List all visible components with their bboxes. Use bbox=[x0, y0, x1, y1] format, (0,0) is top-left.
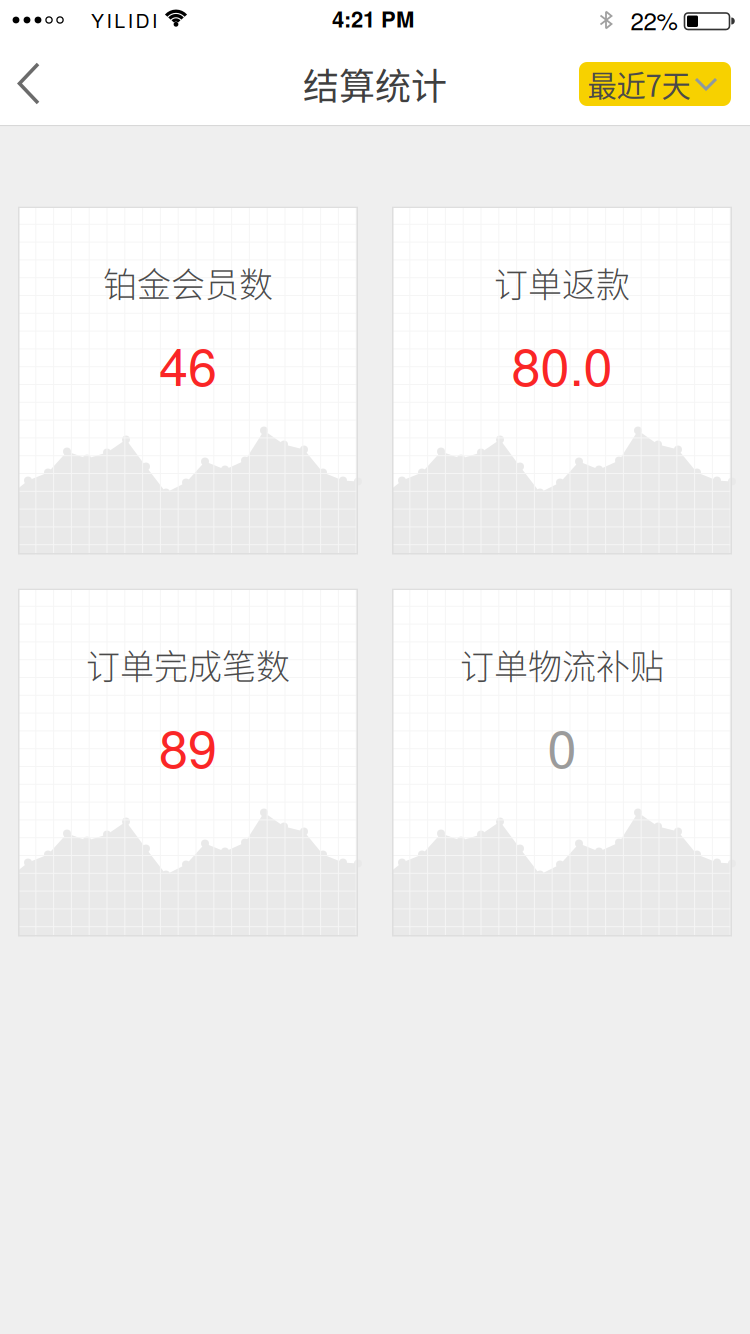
staticText: 22% bbox=[630, 3, 677, 37]
staticText: I bbox=[107, 6, 112, 33]
staticText: D bbox=[135, 6, 149, 33]
staticText: 4:21 PM bbox=[332, 3, 414, 34]
staticText: I bbox=[128, 6, 133, 33]
staticText: Y bbox=[91, 6, 104, 33]
staticText: 结算统计 bbox=[303, 58, 447, 110]
button[interactable]: Back bbox=[0, 52, 62, 115]
staticText: L bbox=[114, 6, 125, 33]
staticText: 订单返款 bbox=[494, 258, 630, 307]
staticText: 46 bbox=[159, 326, 217, 401]
staticText: 80.0 bbox=[511, 326, 612, 401]
staticText: 订单完成笔数 bbox=[86, 640, 290, 689]
staticText: 89 bbox=[159, 708, 217, 783]
button[interactable]: 最近7天 bbox=[579, 62, 731, 106]
staticText: 0 bbox=[547, 708, 576, 783]
staticText: 最近7天 bbox=[587, 63, 690, 105]
staticText: I bbox=[152, 6, 157, 33]
staticText: 订单物流补贴 bbox=[460, 640, 664, 689]
staticText: 铂金会员数 bbox=[103, 258, 273, 307]
